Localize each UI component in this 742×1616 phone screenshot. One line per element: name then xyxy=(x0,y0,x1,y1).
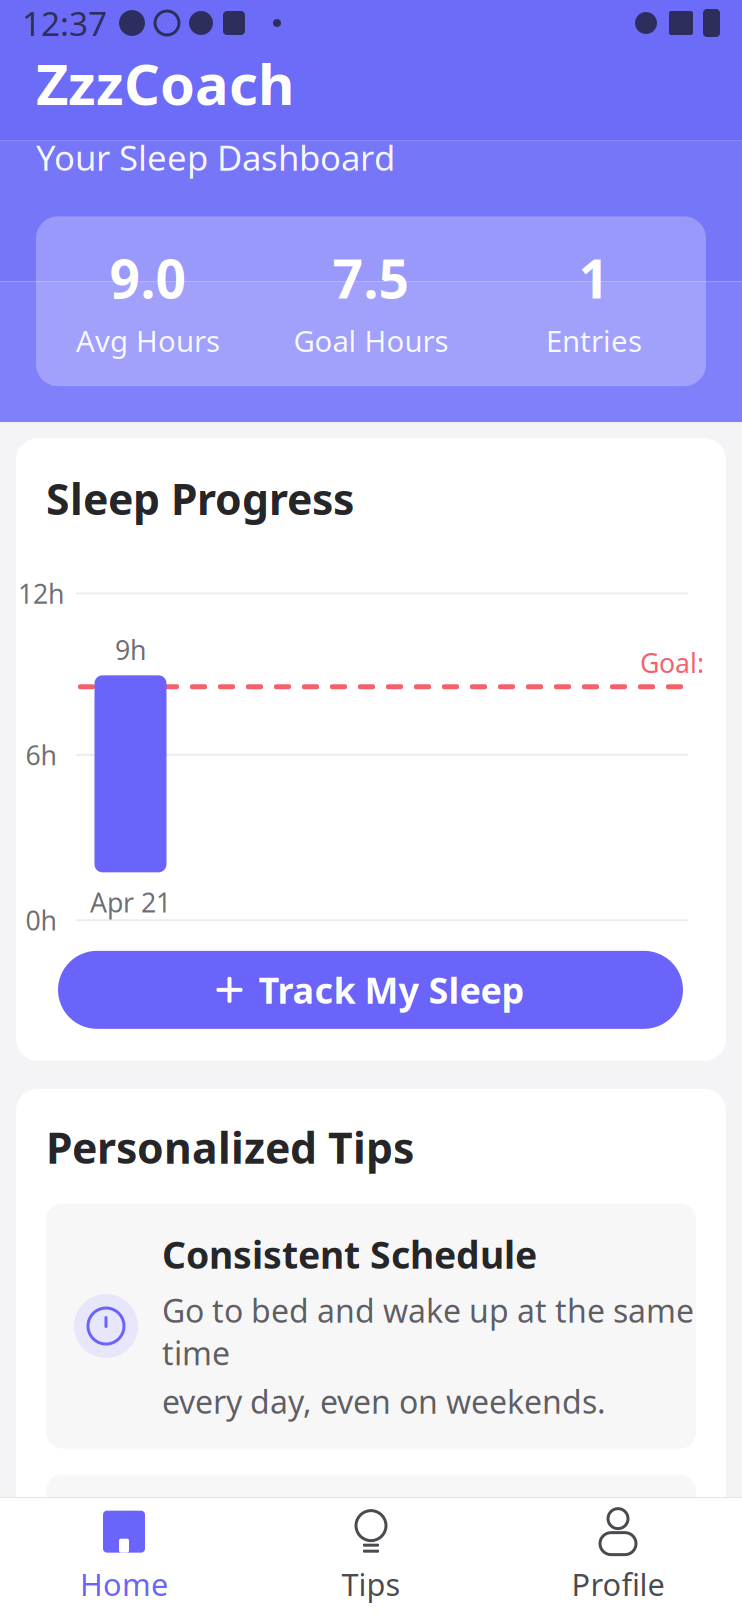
staticText: Consistent Schedule xyxy=(162,1229,537,1279)
staticText: Limit Screen Time xyxy=(162,1501,492,1550)
staticText: Apr 21 xyxy=(90,884,171,920)
staticText: Entries xyxy=(546,321,642,360)
staticText: Sleep Progress xyxy=(46,470,354,527)
staticText: 7.5 xyxy=(332,242,409,313)
button[interactable]: Home xyxy=(0,1498,247,1616)
staticText: Personalized Tips xyxy=(46,1119,414,1175)
staticText: Avg Hours xyxy=(76,321,220,360)
staticText: Profile xyxy=(571,1564,664,1604)
staticText: 9.0 xyxy=(109,242,186,313)
button[interactable]: Tips xyxy=(247,1498,494,1616)
button[interactable]: Track My Sleep xyxy=(58,951,683,1029)
staticText: ZzzCoach xyxy=(36,46,294,120)
staticText: every day, even on weekends. xyxy=(162,1380,606,1423)
staticText: 12h xyxy=(18,576,64,611)
button[interactable]: Profile xyxy=(494,1498,741,1616)
staticText: Your Sleep Dashboard xyxy=(36,134,395,180)
staticText: Tips xyxy=(341,1564,400,1604)
staticText: Home xyxy=(80,1564,168,1604)
staticText: Avoid screens at least 1 hour before xyxy=(162,1560,590,1616)
button[interactable]: Limit Screen Time xyxy=(46,1475,696,1616)
staticText: 12:37 xyxy=(22,1,107,45)
staticText: Go to bed and wake up at the same time xyxy=(162,1289,694,1374)
staticText: 1 xyxy=(578,242,609,313)
staticText: 0h xyxy=(25,902,56,938)
staticText: 9h xyxy=(115,632,146,667)
button[interactable]: Consistent Schedule xyxy=(46,1203,696,1449)
staticText: Goal: xyxy=(640,645,704,680)
staticText: 6h xyxy=(25,737,56,772)
staticText: Track My Sleep xyxy=(258,966,524,1014)
staticText: Goal Hours xyxy=(293,321,448,360)
